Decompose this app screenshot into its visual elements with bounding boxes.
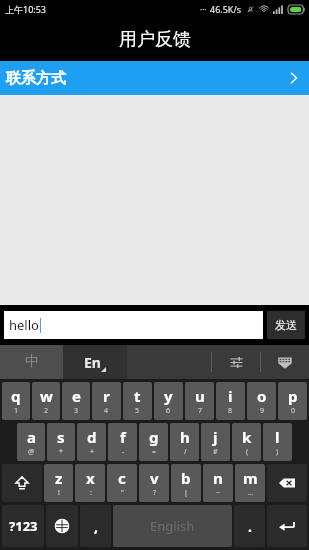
button[interactable]: v	[139, 464, 169, 502]
button[interactable]: z	[44, 464, 73, 502]
staticText: /	[184, 447, 187, 457]
button[interactable]: hello	[4, 311, 263, 339]
staticText: =	[152, 447, 157, 457]
staticText: 9	[260, 406, 265, 416]
staticText: 6	[166, 406, 171, 416]
staticText: (	[246, 447, 249, 457]
staticText: t	[134, 386, 141, 406]
button[interactable]: o	[247, 382, 276, 420]
staticText: ?	[153, 488, 157, 498]
staticText: r	[103, 386, 110, 406]
button[interactable]: g	[139, 423, 168, 461]
staticText: .	[248, 517, 252, 536]
button[interactable]: 发送	[267, 311, 305, 339]
staticText: p	[288, 386, 298, 406]
button[interactable]: Shift	[2, 464, 42, 502]
staticText: !	[58, 488, 60, 498]
button[interactable]: Backspace	[267, 464, 307, 502]
button[interactable]: 联系方式	[0, 61, 309, 95]
staticText: x	[86, 468, 95, 488]
staticText: w	[40, 386, 53, 406]
button[interactable]: w	[32, 382, 60, 420]
staticText: l	[275, 427, 280, 447]
staticText: e	[72, 386, 81, 406]
staticText: 联系方式	[6, 69, 66, 88]
button[interactable]: Input settings	[212, 345, 260, 379]
staticText: f	[120, 427, 126, 447]
staticText: h	[180, 427, 190, 447]
button[interactable]: j	[201, 423, 230, 461]
staticText: 3	[74, 406, 79, 416]
staticText: a	[27, 427, 36, 447]
button[interactable]: x	[75, 464, 105, 502]
staticText: hello	[9, 316, 39, 334]
button[interactable]: p	[278, 382, 307, 420]
button[interactable]: t	[123, 382, 152, 420]
button[interactable]: y	[154, 382, 183, 420]
staticText: q	[11, 386, 21, 406]
staticText: s	[57, 427, 65, 447]
staticText: ···	[200, 4, 207, 15]
button[interactable]: ?123	[2, 505, 44, 547]
staticText: 8	[228, 406, 233, 416]
button[interactable]: English	[113, 505, 232, 547]
button[interactable]: En	[63, 345, 127, 379]
button[interactable]: k	[232, 423, 261, 461]
button[interactable]: d	[77, 423, 106, 461]
button[interactable]: n	[203, 464, 233, 502]
button[interactable]: h	[170, 423, 199, 461]
staticText: u	[195, 386, 205, 406]
staticText: )	[276, 447, 279, 457]
button[interactable]: e	[62, 382, 90, 420]
staticText: b	[181, 468, 191, 488]
button[interactable]: i	[216, 382, 245, 420]
staticText: k	[242, 427, 252, 447]
staticText: 1	[14, 406, 19, 416]
staticText: 46.5K/s	[210, 3, 242, 15]
staticText: 7	[198, 406, 203, 416]
staticText: English	[150, 517, 195, 535]
button[interactable]: f	[108, 423, 137, 461]
staticText: …	[248, 488, 254, 498]
staticText: n	[213, 468, 223, 488]
staticText: y	[164, 386, 173, 406]
staticText: 4	[104, 406, 109, 416]
staticText: |	[184, 488, 188, 498]
staticText: i	[228, 386, 233, 406]
staticText: 2	[44, 406, 49, 416]
staticText: ,	[94, 517, 98, 536]
staticText: 中	[25, 353, 39, 371]
button[interactable]: s	[47, 423, 75, 461]
button[interactable]: l	[263, 423, 292, 461]
button[interactable]: q	[2, 382, 30, 420]
staticText: 0	[291, 406, 296, 416]
button[interactable]: b	[171, 464, 201, 502]
staticText: En	[84, 353, 101, 372]
staticText: 用户反馈	[119, 28, 191, 51]
staticText: *	[59, 447, 63, 457]
staticText: -	[122, 447, 125, 457]
staticText: 5	[135, 406, 140, 416]
staticText: 发送	[275, 318, 297, 332]
staticText: +	[90, 447, 95, 457]
staticText: m	[243, 468, 258, 488]
button[interactable]: c	[107, 464, 137, 502]
staticText: j	[213, 427, 218, 447]
staticText: ~	[216, 488, 221, 498]
staticText: g	[149, 427, 159, 447]
button[interactable]: Hide keyboard	[261, 345, 309, 379]
staticText: v	[150, 468, 159, 488]
button[interactable]: m	[235, 464, 265, 502]
button[interactable]: r	[92, 382, 121, 420]
staticText: @	[28, 447, 35, 457]
button[interactable]: 中	[0, 345, 63, 379]
staticText: 上午10:53	[5, 3, 47, 15]
staticText: :	[90, 488, 92, 498]
button[interactable]: Enter	[267, 505, 307, 547]
button[interactable]: Change language	[46, 505, 78, 547]
button[interactable]: ,	[80, 505, 111, 547]
staticText: "	[121, 488, 124, 498]
button[interactable]: u	[185, 382, 214, 420]
button[interactable]: a	[17, 423, 45, 461]
button[interactable]: .	[234, 505, 265, 547]
